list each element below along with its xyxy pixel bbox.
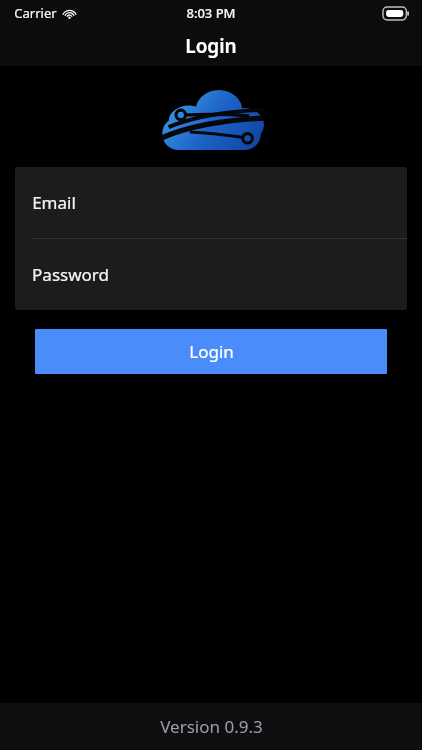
button[interactable]: Password	[15, 239, 407, 310]
staticText: 8:03 PM	[186, 4, 236, 22]
staticText: Carrier	[14, 4, 57, 22]
staticText: Version 0.9.3	[160, 715, 263, 738]
button[interactable]: Login	[35, 329, 387, 374]
staticText: Email	[32, 191, 76, 214]
staticText: Login	[185, 33, 237, 59]
staticText: Login	[189, 340, 234, 363]
button[interactable]: Email	[15, 167, 407, 238]
staticText: Password	[32, 263, 109, 286]
